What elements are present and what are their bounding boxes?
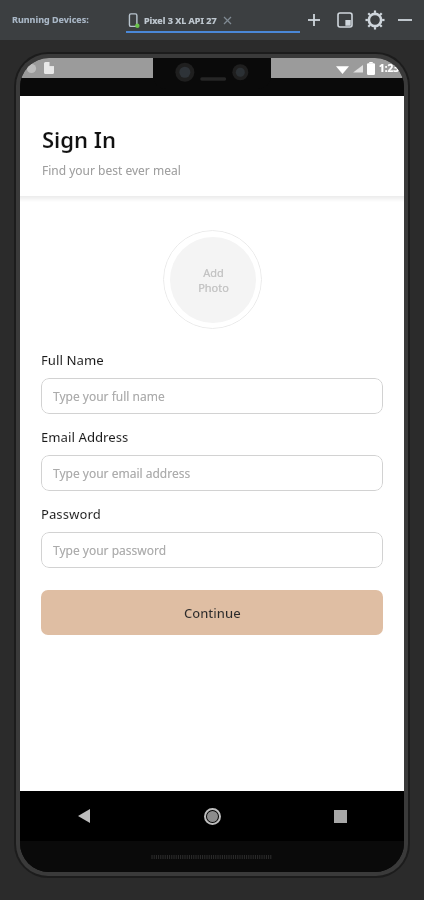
button[interactable]: Settings [366,11,384,29]
staticText: Add Photo [198,265,229,295]
staticText: Sign In [42,124,117,154]
button[interactable]: Type your password [41,532,383,568]
staticText: Password [41,505,101,523]
staticText: Full Name [41,351,104,369]
button[interactable]: Snapshot [336,11,354,29]
staticText: Type your email address [53,465,191,481]
staticText: Continue [184,604,241,622]
button[interactable]: Type your email address [41,455,383,491]
staticText: Email Address [41,428,129,446]
button[interactable]: Add device [305,11,323,29]
button[interactable]: Add Photo [163,230,262,329]
staticText: 1:23 [379,61,399,75]
staticText: Type your password [53,542,167,558]
button[interactable]: Pixel 3 XL API 27 [128,8,232,32]
staticText: Pixel 3 XL API 27 [144,14,217,26]
button[interactable]: Back [67,799,101,833]
button[interactable]: Minimize [396,11,414,29]
button[interactable]: Recents [323,799,357,833]
button[interactable]: Type your full name [41,378,383,414]
staticText: Running Devices: [12,13,89,25]
staticText: Find your best ever meal [42,162,181,178]
staticText: Type your full name [53,388,165,404]
button[interactable]: Home [195,799,229,833]
button[interactable]: Continue [41,590,383,635]
